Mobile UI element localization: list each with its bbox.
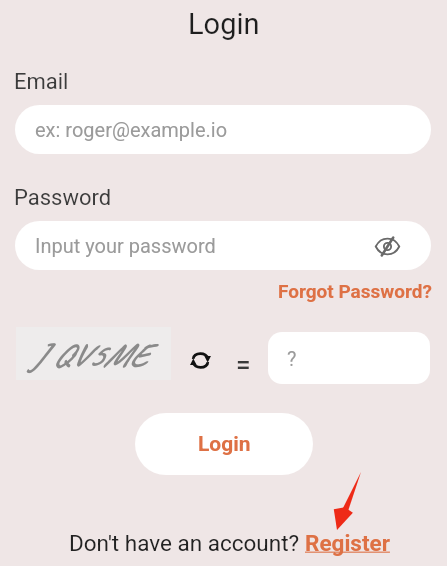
staticText: ? [287, 347, 297, 370]
staticText: Email [14, 69, 69, 95]
button[interactable]: Show password [371, 230, 403, 262]
staticText: Register [305, 530, 390, 556]
button[interactable]: Input your password [15, 221, 431, 270]
button[interactable]: Forgot Password? [278, 280, 432, 302]
staticText: Password [14, 185, 112, 211]
button[interactable]: Register [305, 530, 390, 556]
button[interactable]: ex: roger@example.io [15, 105, 431, 154]
staticText: Login [188, 7, 260, 41]
button[interactable]: ? [268, 332, 430, 384]
staticText: Don't have an account? [69, 530, 305, 556]
staticText: Forgot Password? [278, 280, 432, 302]
staticText: Login [198, 432, 251, 457]
staticText: = [236, 350, 251, 380]
staticText: Input your password [35, 234, 216, 257]
button[interactable]: Login [135, 413, 313, 475]
staticText: ex: roger@example.io [35, 118, 228, 141]
staticText: J QV5ME [31, 334, 147, 376]
button[interactable]: Refresh captcha [190, 350, 211, 371]
